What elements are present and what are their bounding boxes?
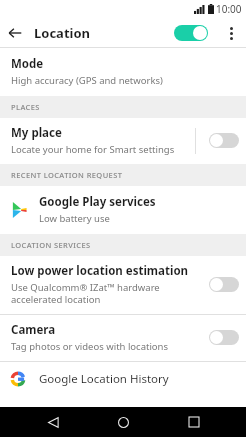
button[interactable]: Low power location estimation	[0, 256, 246, 314]
staticText: LOCATION SERVICES	[11, 240, 91, 250]
staticText: RECENT LOCATION REQUEST	[11, 170, 123, 180]
staticText: Low battery use	[39, 212, 110, 225]
button[interactable]: More options	[218, 20, 244, 46]
button[interactable]: My place	[0, 118, 246, 164]
button[interactable]: Back	[0, 18, 30, 48]
staticText: Location	[34, 24, 90, 42]
staticText: Google Play services	[39, 194, 156, 210]
button[interactable]: Home	[105, 407, 141, 437]
staticText: Locate your home for Smart settings	[11, 143, 175, 156]
staticText: Tag photos or videos with locations	[11, 340, 169, 353]
staticText: Google Location History	[39, 371, 169, 387]
button[interactable]: Google Location History	[0, 362, 246, 396]
staticText: My place	[11, 125, 62, 141]
button[interactable]: Mode	[0, 48, 246, 96]
staticText: 10:00	[216, 2, 242, 16]
button[interactable]: Back	[35, 407, 71, 437]
button[interactable]: Google Play services	[0, 186, 246, 234]
staticText: Mode	[11, 56, 44, 72]
staticText: PLACES	[11, 102, 40, 112]
staticText: Low power location estimation	[11, 263, 189, 279]
button[interactable]: Low power location estimation switch	[202, 272, 246, 297]
button[interactable]: Location toggle	[168, 21, 214, 45]
button[interactable]: Camera switch	[202, 325, 246, 350]
staticText: High accuracy (GPS and networks)	[11, 74, 163, 87]
button[interactable]: My place switch	[202, 128, 246, 153]
button[interactable]: Recent apps	[176, 407, 212, 437]
button[interactable]: Camera	[0, 315, 246, 361]
staticText: Camera	[11, 322, 56, 338]
staticText: Use Qualcomm® IZat™ hardware accelerated…	[11, 281, 160, 306]
